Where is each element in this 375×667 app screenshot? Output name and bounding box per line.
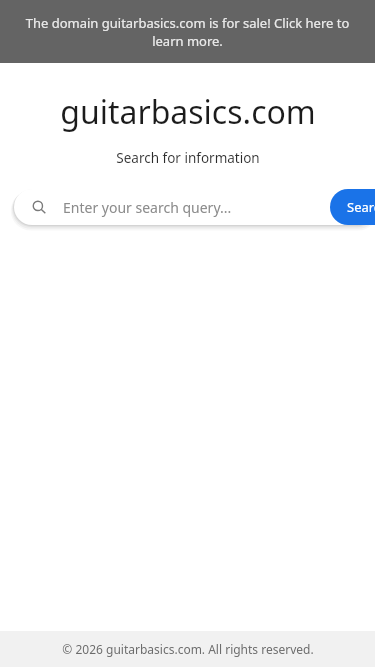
staticText: Search xyxy=(347,198,375,216)
staticText: guitarbasics.com xyxy=(60,90,316,134)
staticText: Search for information xyxy=(116,149,260,167)
button[interactable]: The domain guitarbasics.com is for sale!… xyxy=(0,0,375,63)
staticText: The domain guitarbasics.com is for sale!… xyxy=(18,14,357,50)
other: Search xyxy=(32,200,46,214)
staticText: Enter your search query... xyxy=(63,198,232,217)
staticText: © 2026 guitarbasics.com. All rights rese… xyxy=(62,641,314,657)
button[interactable]: Search xyxy=(14,189,375,225)
button[interactable]: Search xyxy=(330,189,375,225)
